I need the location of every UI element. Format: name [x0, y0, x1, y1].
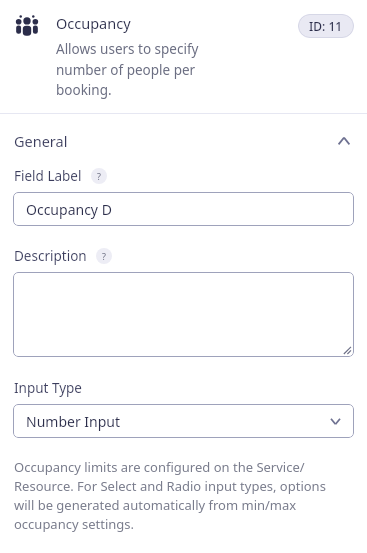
button[interactable]: Help	[91, 168, 107, 184]
staticText: Description	[14, 247, 87, 265]
staticText: Occupancy	[56, 13, 131, 33]
staticText: Allows users to specify number of people…	[56, 40, 252, 99]
button[interactable]	[13, 272, 354, 357]
button[interactable]: Number Input	[13, 404, 354, 438]
staticText: Field Label	[14, 167, 82, 185]
staticText: Input Type	[14, 379, 82, 397]
staticText: ?	[97, 170, 101, 182]
button[interactable]: ID: 11	[298, 14, 354, 38]
button[interactable]: Help	[96, 248, 112, 264]
staticText: Number Input	[26, 412, 121, 431]
staticText: Occupancy limits are configured on the S…	[14, 458, 349, 533]
staticText: Occupancy D	[26, 200, 112, 219]
staticText: General	[14, 131, 68, 151]
button[interactable]: General	[0, 114, 367, 167]
staticText: ID: 11	[309, 18, 343, 34]
staticText: ?	[102, 250, 106, 262]
button[interactable]: Occupancy D	[13, 192, 354, 226]
